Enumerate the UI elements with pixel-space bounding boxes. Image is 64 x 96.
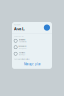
staticText: Cancel anytime in Settings: [14, 58, 30, 60]
staticText: Manage plan: [24, 62, 41, 66]
staticText: Visa 4821: [19, 54, 26, 56]
staticText: Account: [14, 24, 20, 26]
staticText: SUBSCRIPTION: [14, 35, 24, 37]
staticText: Payment: [19, 52, 25, 54]
staticText: Oct 14, 2025: [19, 47, 27, 49]
staticText: Renews on: [19, 45, 27, 47]
staticText: $9.99 / month: [19, 41, 27, 43]
staticText: Ava L.: [14, 26, 25, 31]
staticText: Monthly fee: [19, 39, 26, 41]
